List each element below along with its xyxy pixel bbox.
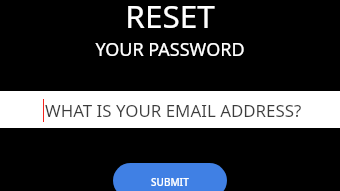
button[interactable]: WHAT IS YOUR EMAIL ADDRESS?	[0, 91, 340, 128]
staticText: YOUR PASSWORD	[95, 37, 245, 62]
staticText: SUBMIT	[151, 175, 189, 189]
button[interactable]: SUBMIT	[113, 163, 227, 191]
staticText: WHAT IS YOUR EMAIL ADDRESS?	[45, 99, 302, 122]
staticText: RESET	[125, 0, 215, 37]
